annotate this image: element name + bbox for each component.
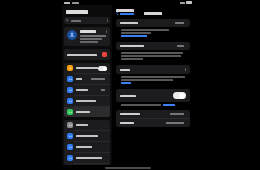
button[interactable]: Toggle: [64, 63, 110, 73]
button[interactable]: [64, 120, 110, 130]
button[interactable]: [116, 19, 190, 27]
button[interactable]: Back: [116, 12, 134, 15]
button[interactable]: [64, 153, 110, 163]
button[interactable]: [64, 27, 110, 46]
button[interactable]: [64, 96, 110, 106]
button[interactable]: Toggle: [116, 89, 190, 102]
button[interactable]: [116, 65, 190, 74]
button[interactable]: [64, 142, 110, 152]
button[interactable]: [64, 74, 110, 84]
button[interactable]: Search: [64, 17, 110, 24]
button[interactable]: [116, 119, 190, 127]
button[interactable]: [64, 131, 110, 141]
button[interactable]: [116, 42, 190, 50]
button[interactable]: Toggle: [98, 66, 107, 71]
button[interactable]: [64, 85, 110, 95]
button[interactable]: [64, 107, 110, 117]
button[interactable]: [116, 110, 190, 118]
button[interactable]: [64, 49, 110, 60]
button[interactable]: Toggle: [173, 92, 186, 99]
